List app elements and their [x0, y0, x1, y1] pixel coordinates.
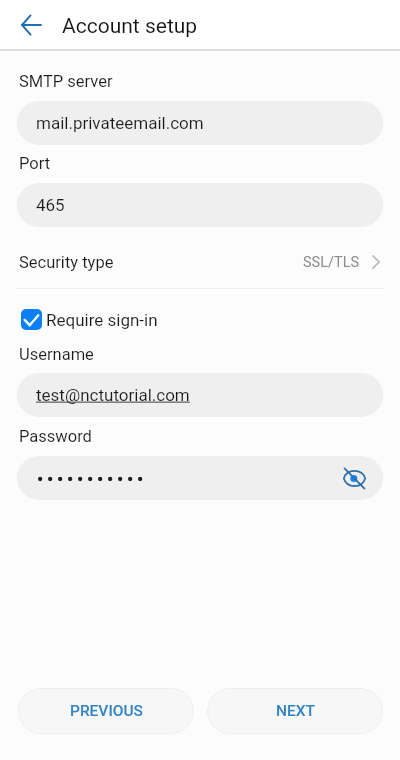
button[interactable]: Security type	[0, 244, 400, 280]
button[interactable]: Show password	[339, 463, 369, 493]
staticText: test@nctutorial.com	[36, 385, 190, 405]
staticText: 465	[36, 195, 65, 215]
staticText: SSL/TLS	[303, 254, 360, 271]
staticText: Security type	[19, 253, 114, 272]
staticText: Username	[19, 345, 94, 364]
staticText: Require sign-in	[46, 310, 158, 330]
staticText: mail.privateemail.com	[36, 113, 204, 133]
button[interactable]: PREVIOUS	[18, 688, 194, 734]
button[interactable]: NEXT	[207, 688, 383, 734]
staticText: Password	[19, 427, 92, 446]
button[interactable]: test@nctutorial.com	[17, 373, 383, 417]
staticText: Account setup	[62, 14, 198, 39]
staticText: SMTP server	[19, 72, 113, 91]
staticText: PREVIOUS	[70, 702, 143, 720]
button[interactable]: Require sign-in	[21, 309, 158, 330]
button[interactable]: 465	[17, 183, 383, 227]
staticText: Port	[19, 154, 51, 173]
button[interactable]: mail.privateemail.com	[17, 101, 383, 145]
button[interactable]: Back	[9, 3, 53, 47]
staticText: NEXT	[276, 702, 315, 720]
